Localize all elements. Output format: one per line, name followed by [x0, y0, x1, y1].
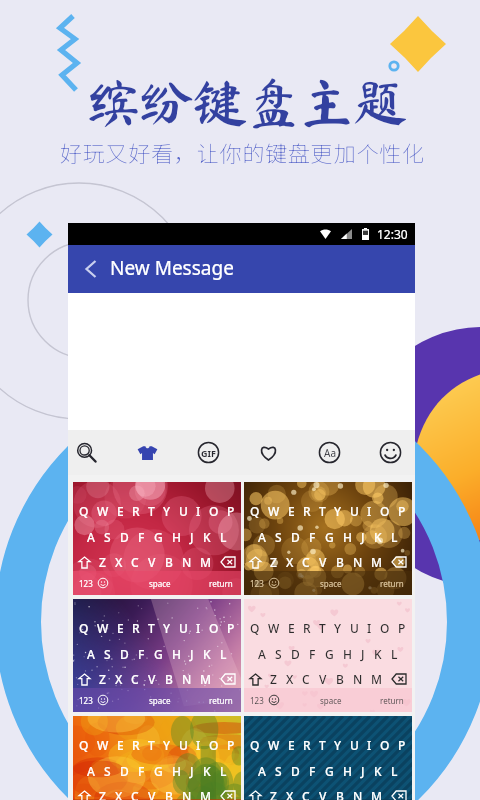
- staticText: F: [138, 646, 145, 662]
- staticText: V: [148, 788, 156, 800]
- staticText: F: [138, 529, 145, 545]
- button[interactable]: Font: [319, 430, 340, 475]
- staticText: W: [97, 503, 109, 519]
- staticText: Q: [79, 620, 89, 636]
- staticText: P: [227, 737, 235, 753]
- staticText: O: [380, 620, 390, 636]
- button[interactable]: Themes: [137, 430, 158, 475]
- staticText: K: [374, 529, 382, 545]
- staticText: H: [172, 529, 181, 545]
- staticText: I: [367, 503, 372, 519]
- staticText: D: [291, 646, 300, 662]
- staticText: M: [371, 788, 383, 800]
- staticText: H: [343, 763, 352, 779]
- staticText: Y: [334, 620, 342, 636]
- button[interactable]: Emoji: [380, 430, 401, 475]
- button[interactable]: Back: [76, 245, 106, 293]
- staticText: S: [275, 763, 282, 779]
- button[interactable]: Keyboard theme: [73, 599, 241, 712]
- staticText: return: [209, 578, 233, 589]
- staticText: C: [302, 671, 310, 687]
- staticText: W: [268, 620, 280, 636]
- staticText: U: [350, 620, 359, 636]
- staticText: R: [303, 737, 311, 753]
- staticText: P: [398, 737, 406, 753]
- staticText: X: [286, 788, 294, 800]
- staticText: 缤纷键盘主题: [86, 75, 407, 130]
- staticText: Z: [99, 788, 106, 800]
- staticText: B: [336, 671, 344, 687]
- staticText: 123: [79, 695, 93, 706]
- staticText: M: [200, 788, 212, 800]
- button[interactable]: Search: [76, 430, 97, 475]
- staticText: P: [227, 620, 235, 636]
- staticText: return: [209, 695, 233, 706]
- staticText: W: [268, 737, 280, 753]
- staticText: B: [336, 788, 344, 800]
- staticText: N: [182, 671, 192, 687]
- staticText: H: [172, 646, 181, 662]
- staticText: M: [371, 554, 383, 570]
- staticText: E: [117, 620, 124, 636]
- button[interactable]: Keyboard theme: [73, 482, 241, 595]
- button[interactable]: Keyboard theme: [244, 599, 412, 712]
- staticText: B: [336, 554, 344, 570]
- staticText: Z: [270, 671, 277, 687]
- staticText: L: [220, 529, 227, 545]
- staticText: W: [97, 737, 109, 753]
- staticText: U: [350, 503, 359, 519]
- staticText: J: [361, 763, 365, 779]
- staticText: G: [325, 529, 334, 545]
- staticText: L: [391, 763, 398, 779]
- staticText: H: [343, 646, 352, 662]
- staticText: W: [97, 620, 109, 636]
- staticText: 12:30: [377, 226, 408, 242]
- staticText: G: [325, 646, 334, 662]
- staticText: Q: [79, 503, 89, 519]
- staticText: T: [148, 503, 155, 519]
- staticText: M: [371, 671, 383, 687]
- staticText: U: [350, 737, 359, 753]
- staticText: D: [120, 763, 129, 779]
- staticText: G: [154, 763, 163, 779]
- staticText: return: [380, 695, 404, 706]
- staticText: N: [353, 788, 363, 800]
- staticText: S: [104, 763, 111, 779]
- staticText: O: [380, 737, 390, 753]
- staticText: I: [196, 503, 201, 519]
- staticText: O: [380, 503, 390, 519]
- staticText: G: [154, 646, 163, 662]
- staticText: A: [258, 529, 266, 545]
- staticText: B: [165, 788, 173, 800]
- staticText: E: [288, 737, 295, 753]
- staticText: O: [209, 503, 219, 519]
- staticText: R: [132, 737, 140, 753]
- staticText: V: [319, 788, 327, 800]
- button[interactable]: Favorites: [258, 430, 279, 475]
- staticText: GIF: [201, 447, 216, 459]
- staticText: J: [190, 529, 194, 545]
- button[interactable]: Keyboard theme: [244, 482, 412, 595]
- staticText: P: [227, 503, 235, 519]
- button[interactable]: GIF: [198, 430, 219, 475]
- staticText: G: [154, 529, 163, 545]
- staticText: Z: [270, 788, 277, 800]
- button[interactable]: Keyboard theme: [73, 716, 241, 800]
- staticText: Q: [79, 737, 89, 753]
- staticText: Q: [250, 620, 260, 636]
- staticText: K: [374, 646, 382, 662]
- staticText: C: [131, 671, 139, 687]
- staticText: P: [398, 620, 406, 636]
- staticText: V: [148, 671, 156, 687]
- staticText: F: [309, 529, 316, 545]
- staticText: L: [220, 763, 227, 779]
- staticText: N: [353, 671, 363, 687]
- staticText: 好玩又好看，让你的键盘更加个性化: [60, 136, 425, 168]
- staticText: space: [320, 578, 342, 589]
- button[interactable]: Keyboard theme: [244, 716, 412, 800]
- staticText: Z: [99, 671, 106, 687]
- staticText: Y: [163, 620, 171, 636]
- staticText: I: [367, 620, 372, 636]
- staticText: C: [131, 554, 139, 570]
- staticText: M: [200, 671, 212, 687]
